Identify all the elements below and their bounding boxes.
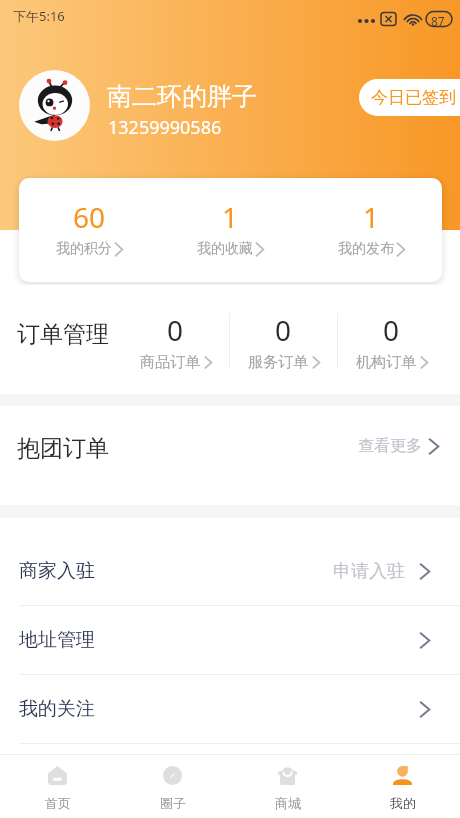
staticText: 60	[73, 198, 106, 236]
staticText: 下午5:16	[13, 7, 65, 25]
staticText: 87	[431, 13, 445, 29]
staticText: 1	[363, 198, 380, 236]
button[interactable]: Circle	[115, 755, 230, 818]
button[interactable]: 60	[19, 178, 160, 282]
button[interactable]: Home	[0, 755, 115, 818]
staticText: 订单管理	[17, 320, 109, 349]
staticText: 商城	[275, 795, 301, 811]
button[interactable]: 我的关注	[0, 675, 460, 744]
button[interactable]: 地址管理	[0, 606, 460, 675]
staticText: 1	[222, 198, 239, 236]
button[interactable]: 商家入驻	[0, 537, 460, 606]
button[interactable]: Store	[230, 755, 345, 818]
button[interactable]: 0	[122, 285, 229, 372]
staticText: 圈子	[160, 795, 186, 811]
staticText: 服务订单	[248, 353, 308, 372]
staticText: 南二环的胖子	[107, 81, 257, 112]
staticText: 我的收藏	[197, 240, 253, 258]
staticText: 申请入驻	[333, 560, 405, 583]
staticText: 我的发布	[338, 240, 394, 258]
staticText: 查看更多	[358, 436, 422, 456]
staticText: 机构订单	[356, 353, 416, 372]
staticText: 0	[167, 311, 184, 349]
staticText: 地址管理	[19, 628, 95, 652]
staticText: 0	[383, 311, 400, 349]
staticText: 0	[275, 311, 292, 349]
button[interactable]: 0	[230, 285, 337, 372]
button[interactable]: 1	[160, 178, 301, 282]
staticText: 13259990586	[108, 115, 222, 140]
staticText: 我的	[390, 795, 416, 811]
staticText: 抱团订单	[17, 434, 109, 463]
staticText: 今日已签到	[371, 87, 456, 108]
button[interactable]: 1	[301, 178, 442, 282]
button[interactable]: 今日已签到	[359, 79, 460, 116]
staticText: 首页	[45, 795, 71, 811]
staticText: 商家入驻	[19, 559, 95, 583]
button[interactable]: Profile	[345, 755, 460, 818]
staticText: 我的积分	[56, 240, 112, 258]
staticText: 商品订单	[140, 353, 200, 372]
button[interactable]: 抱团订单	[0, 406, 460, 505]
staticText: 我的关注	[19, 697, 95, 721]
button[interactable]: 0	[338, 285, 445, 372]
